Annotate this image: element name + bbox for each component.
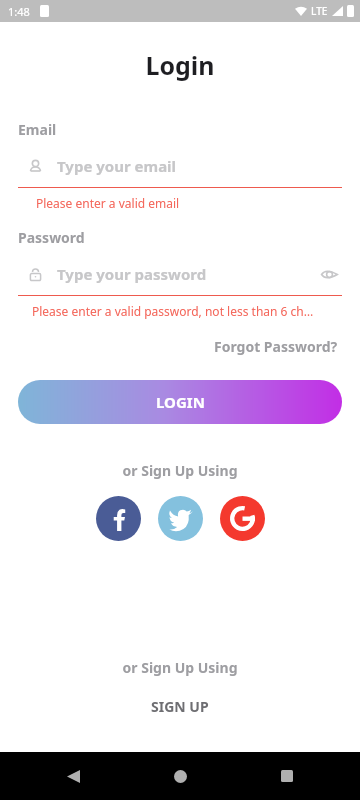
staticText: or Sign Up Using <box>0 658 360 677</box>
button[interactable]: Type your email <box>0 151 360 181</box>
button[interactable]: Recent apps <box>272 761 302 791</box>
button[interactable]: Show password <box>316 261 342 287</box>
staticText: Please enter a valid password, not less … <box>32 303 314 319</box>
staticText: Please enter a valid email <box>36 195 180 211</box>
staticText: LTE <box>311 4 328 18</box>
staticText: Type your email <box>57 156 177 176</box>
button[interactable]: Type your password <box>0 259 360 289</box>
staticText: LOGIN <box>156 392 205 412</box>
staticText: Login <box>0 48 360 82</box>
button[interactable]: Sign up with Google <box>220 496 265 541</box>
button[interactable]: SIGN UP <box>139 693 221 720</box>
button[interactable]: Home <box>165 761 195 791</box>
button[interactable]: Sign up with Twitter <box>158 496 203 541</box>
staticText: Password <box>18 228 85 247</box>
button[interactable]: LOGIN <box>18 380 342 424</box>
staticText: Type your password <box>57 264 207 284</box>
button[interactable]: Back <box>58 761 88 791</box>
staticText: 1:48 <box>8 4 30 19</box>
staticText: or Sign Up Using <box>0 461 360 480</box>
button[interactable]: Sign up with Facebook <box>96 496 141 541</box>
staticText: Email <box>18 120 57 139</box>
button[interactable]: Forgot Password? <box>210 333 342 360</box>
